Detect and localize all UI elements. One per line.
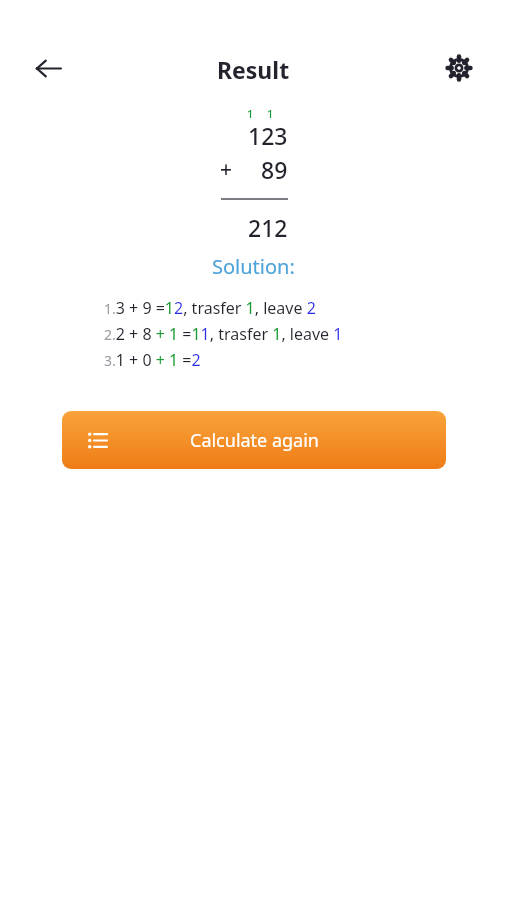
button[interactable]: Calculate again (62, 411, 446, 469)
staticText: 3.1 + 0 + 1 =2 (104, 349, 201, 371)
staticText: 2.2 + 8 + 1 =11, trasfer 1, leave 1 (104, 323, 343, 345)
button[interactable]: Back (28, 48, 68, 88)
button[interactable]: Settings (439, 48, 479, 88)
staticText: 1.3 + 9 =12, trasfer 1, leave 2 (104, 297, 316, 319)
staticText: 1 (247, 106, 254, 120)
staticText: Solution: (212, 253, 295, 280)
staticText: Calculate again (190, 428, 319, 453)
staticText: + (220, 155, 233, 184)
staticText: Result (217, 54, 290, 85)
staticText: 123 (248, 120, 288, 151)
staticText: 212 (248, 212, 288, 243)
staticText: 1 (267, 106, 274, 120)
staticText: 89 (261, 154, 288, 185)
